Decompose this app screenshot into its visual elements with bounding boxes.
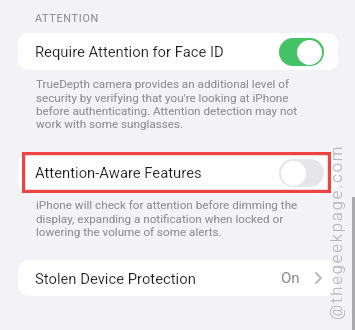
button[interactable]: Attention-Aware Features, off	[279, 159, 324, 187]
button[interactable]: Require Attention for Face ID, on	[279, 38, 324, 66]
staticText: ATTENTION	[35, 12, 100, 25]
staticText: Attention-Aware Features	[35, 164, 202, 181]
staticText: iPhone will check for attention before d…	[36, 198, 308, 238]
button[interactable]: Stolen Device Protection	[18, 260, 338, 296]
staticText: TrueDepth camera provides an additional …	[36, 77, 308, 130]
staticText: Require Attention for Face ID	[35, 43, 224, 60]
staticText: On	[281, 269, 300, 287]
button[interactable]: Require Attention for Face ID	[18, 33, 338, 70]
staticText: Stolen Device Protection	[35, 270, 196, 287]
staticText: @thegeekpage.com	[327, 144, 346, 320]
button[interactable]: Attention-Aware Features	[18, 154, 338, 191]
